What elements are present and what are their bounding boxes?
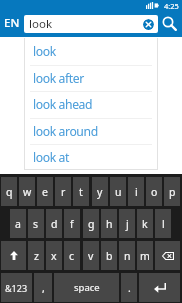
button[interactable]: Enter (139, 273, 180, 302)
staticText: x (51, 249, 57, 263)
staticText: 4:25 (164, 1, 179, 11)
button[interactable]: z (28, 241, 44, 270)
staticText: m (140, 249, 150, 263)
staticText: w (23, 185, 32, 199)
button[interactable]: Shift (1, 241, 26, 270)
button[interactable]: EN (4, 15, 20, 31)
staticText: i (135, 185, 138, 199)
staticText: z (34, 249, 39, 263)
button[interactable]: j (119, 209, 135, 238)
button[interactable]: look ahead (24, 91, 158, 118)
staticText: l (162, 217, 165, 231)
button[interactable]: x (46, 241, 62, 270)
staticText: o (151, 185, 158, 199)
staticText: c (69, 249, 75, 263)
button[interactable]: e (37, 177, 53, 206)
button[interactable]: Search (159, 13, 180, 34)
staticText: g (88, 217, 95, 231)
staticText: r (61, 185, 66, 199)
button[interactable]: Clear (143, 19, 154, 30)
button[interactable]: d (46, 209, 62, 238)
staticText: , (42, 281, 45, 295)
staticText: EN (4, 15, 20, 31)
staticText: j (126, 217, 129, 231)
button[interactable]: m (137, 241, 153, 270)
staticText: q (6, 185, 13, 199)
button[interactable]: s (28, 209, 44, 238)
button[interactable]: Backspace (155, 241, 180, 270)
button[interactable]: space (54, 273, 119, 302)
staticText: e (42, 185, 48, 199)
button[interactable]: i (128, 177, 144, 206)
staticText: p (169, 185, 176, 199)
button[interactable]: c (64, 241, 80, 270)
button[interactable]: t (73, 177, 89, 206)
button[interactable]: a (10, 209, 26, 238)
button[interactable]: f (64, 209, 80, 238)
button[interactable]: look (24, 15, 158, 33)
button[interactable]: b (101, 241, 117, 270)
button[interactable]: look (24, 38, 158, 65)
staticText: u (115, 185, 122, 199)
button[interactable]: &123 (1, 273, 32, 302)
staticText: look around (33, 123, 98, 140)
button[interactable]: , (34, 273, 52, 302)
staticText: look ahead (33, 96, 93, 113)
button[interactable]: look around (24, 118, 158, 145)
button[interactable]: o (146, 177, 162, 206)
staticText: d (51, 217, 58, 231)
staticText: f (70, 217, 74, 231)
button[interactable]: w (19, 177, 35, 206)
staticText: a (15, 217, 21, 231)
staticText: b (106, 249, 113, 263)
staticText: h (106, 217, 113, 231)
button[interactable]: k (137, 209, 153, 238)
staticText: . (128, 281, 131, 295)
staticText: v (88, 249, 94, 263)
staticText: t (79, 185, 83, 199)
button[interactable]: l (155, 209, 171, 238)
button[interactable]: g (83, 209, 99, 238)
button[interactable]: look after (24, 65, 158, 92)
button[interactable]: r (55, 177, 71, 206)
staticText: look at (33, 149, 70, 166)
button[interactable]: y (92, 177, 108, 206)
button[interactable]: look at (24, 144, 158, 171)
staticText: space (74, 281, 100, 294)
staticText: look (33, 43, 56, 60)
button[interactable]: u (110, 177, 126, 206)
staticText: look after (33, 70, 84, 87)
button[interactable]: v (83, 241, 99, 270)
staticText: &123 (5, 282, 28, 294)
staticText: n (124, 249, 131, 263)
staticText: look (29, 16, 53, 32)
button[interactable]: h (101, 209, 117, 238)
button[interactable]: q (1, 177, 17, 206)
staticText: k (142, 217, 148, 231)
staticText: s (33, 217, 39, 231)
button[interactable]: p (164, 177, 180, 206)
button[interactable]: n (119, 241, 135, 270)
button[interactable]: . (121, 273, 137, 302)
staticText: y (97, 185, 103, 199)
